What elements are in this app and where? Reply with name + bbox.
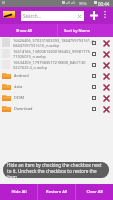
- staticText: DCIM: [14, 95, 25, 100]
- staticText: Show All: [16, 28, 33, 34]
- button[interactable]: Search...: [21, 11, 84, 21]
- button[interactable]: Download: [0, 103, 113, 114]
- staticText: Restore All: [46, 189, 67, 195]
- button[interactable]: Show All: [0, 24, 57, 37]
- staticText: 68447597931616_n.webp: [13, 43, 60, 48]
- staticText: Clear All: [86, 189, 103, 195]
- staticText: Hide All: [11, 189, 27, 195]
- button[interactable]: Android: [0, 70, 113, 81]
- staticText: 16614166_13000613300186452_99581775: [13, 49, 90, 54]
- button[interactable]: Hide item: [89, 82, 99, 92]
- button[interactable]: 16426406_570231503393_1844759793161_o: [0, 37, 113, 48]
- button[interactable]: 16634259_1797583577218830_8467130: [0, 59, 113, 70]
- staticText: Android: [14, 73, 29, 78]
- button[interactable]: Hide item: [89, 71, 99, 81]
- button[interactable]: Delete: [101, 38, 111, 48]
- button[interactable]: Delete: [101, 82, 111, 92]
- button[interactable]: DCIM: [0, 92, 113, 103]
- staticText: 16634259_1797583577218830_8467130: [13, 60, 86, 65]
- button[interactable]: Delete: [101, 60, 111, 70]
- button[interactable]: Clear All: [75, 184, 113, 200]
- button[interactable]: Hide item: [89, 49, 99, 59]
- button[interactable]: 16614166_13000613300186452_99581775: [0, 48, 113, 59]
- button[interactable]: Add: [86, 7, 102, 23]
- staticText: Download: [14, 106, 33, 111]
- staticText: 95%: [79, 1, 87, 6]
- button[interactable]: Hide item: [89, 93, 99, 103]
- staticText: 71926019_n.webp: [13, 54, 47, 59]
- button[interactable]: Hide item: [89, 104, 99, 114]
- button[interactable]: Restore All: [37, 184, 75, 200]
- button[interactable]: Delete: [101, 71, 111, 81]
- button[interactable]: Hide All: [0, 184, 37, 200]
- staticText: data: [14, 84, 23, 89]
- staticText: Sort by Name: [64, 28, 91, 34]
- button[interactable]: Hide item: [89, 60, 99, 70]
- button[interactable]: data: [0, 81, 113, 92]
- button[interactable]: Sort by Name: [57, 24, 113, 37]
- staticText: 9227623 4_n.webp: [13, 65, 48, 70]
- staticText: Search...: [23, 13, 42, 19]
- staticText: 16426406_570231503393_1844759793161_o: [13, 38, 94, 43]
- button[interactable]: App icon: [3, 11, 15, 18]
- button[interactable]: Hide item: [89, 38, 99, 48]
- button[interactable]: Delete: [101, 93, 111, 103]
- staticText: 00:44: [98, 1, 110, 7]
- button[interactable]: More options: [100, 9, 110, 19]
- button[interactable]: Delete: [101, 49, 111, 59]
- button[interactable]: Delete: [101, 104, 111, 114]
- staticText: Hide an item by checking the checkbox ne…: [7, 162, 105, 178]
